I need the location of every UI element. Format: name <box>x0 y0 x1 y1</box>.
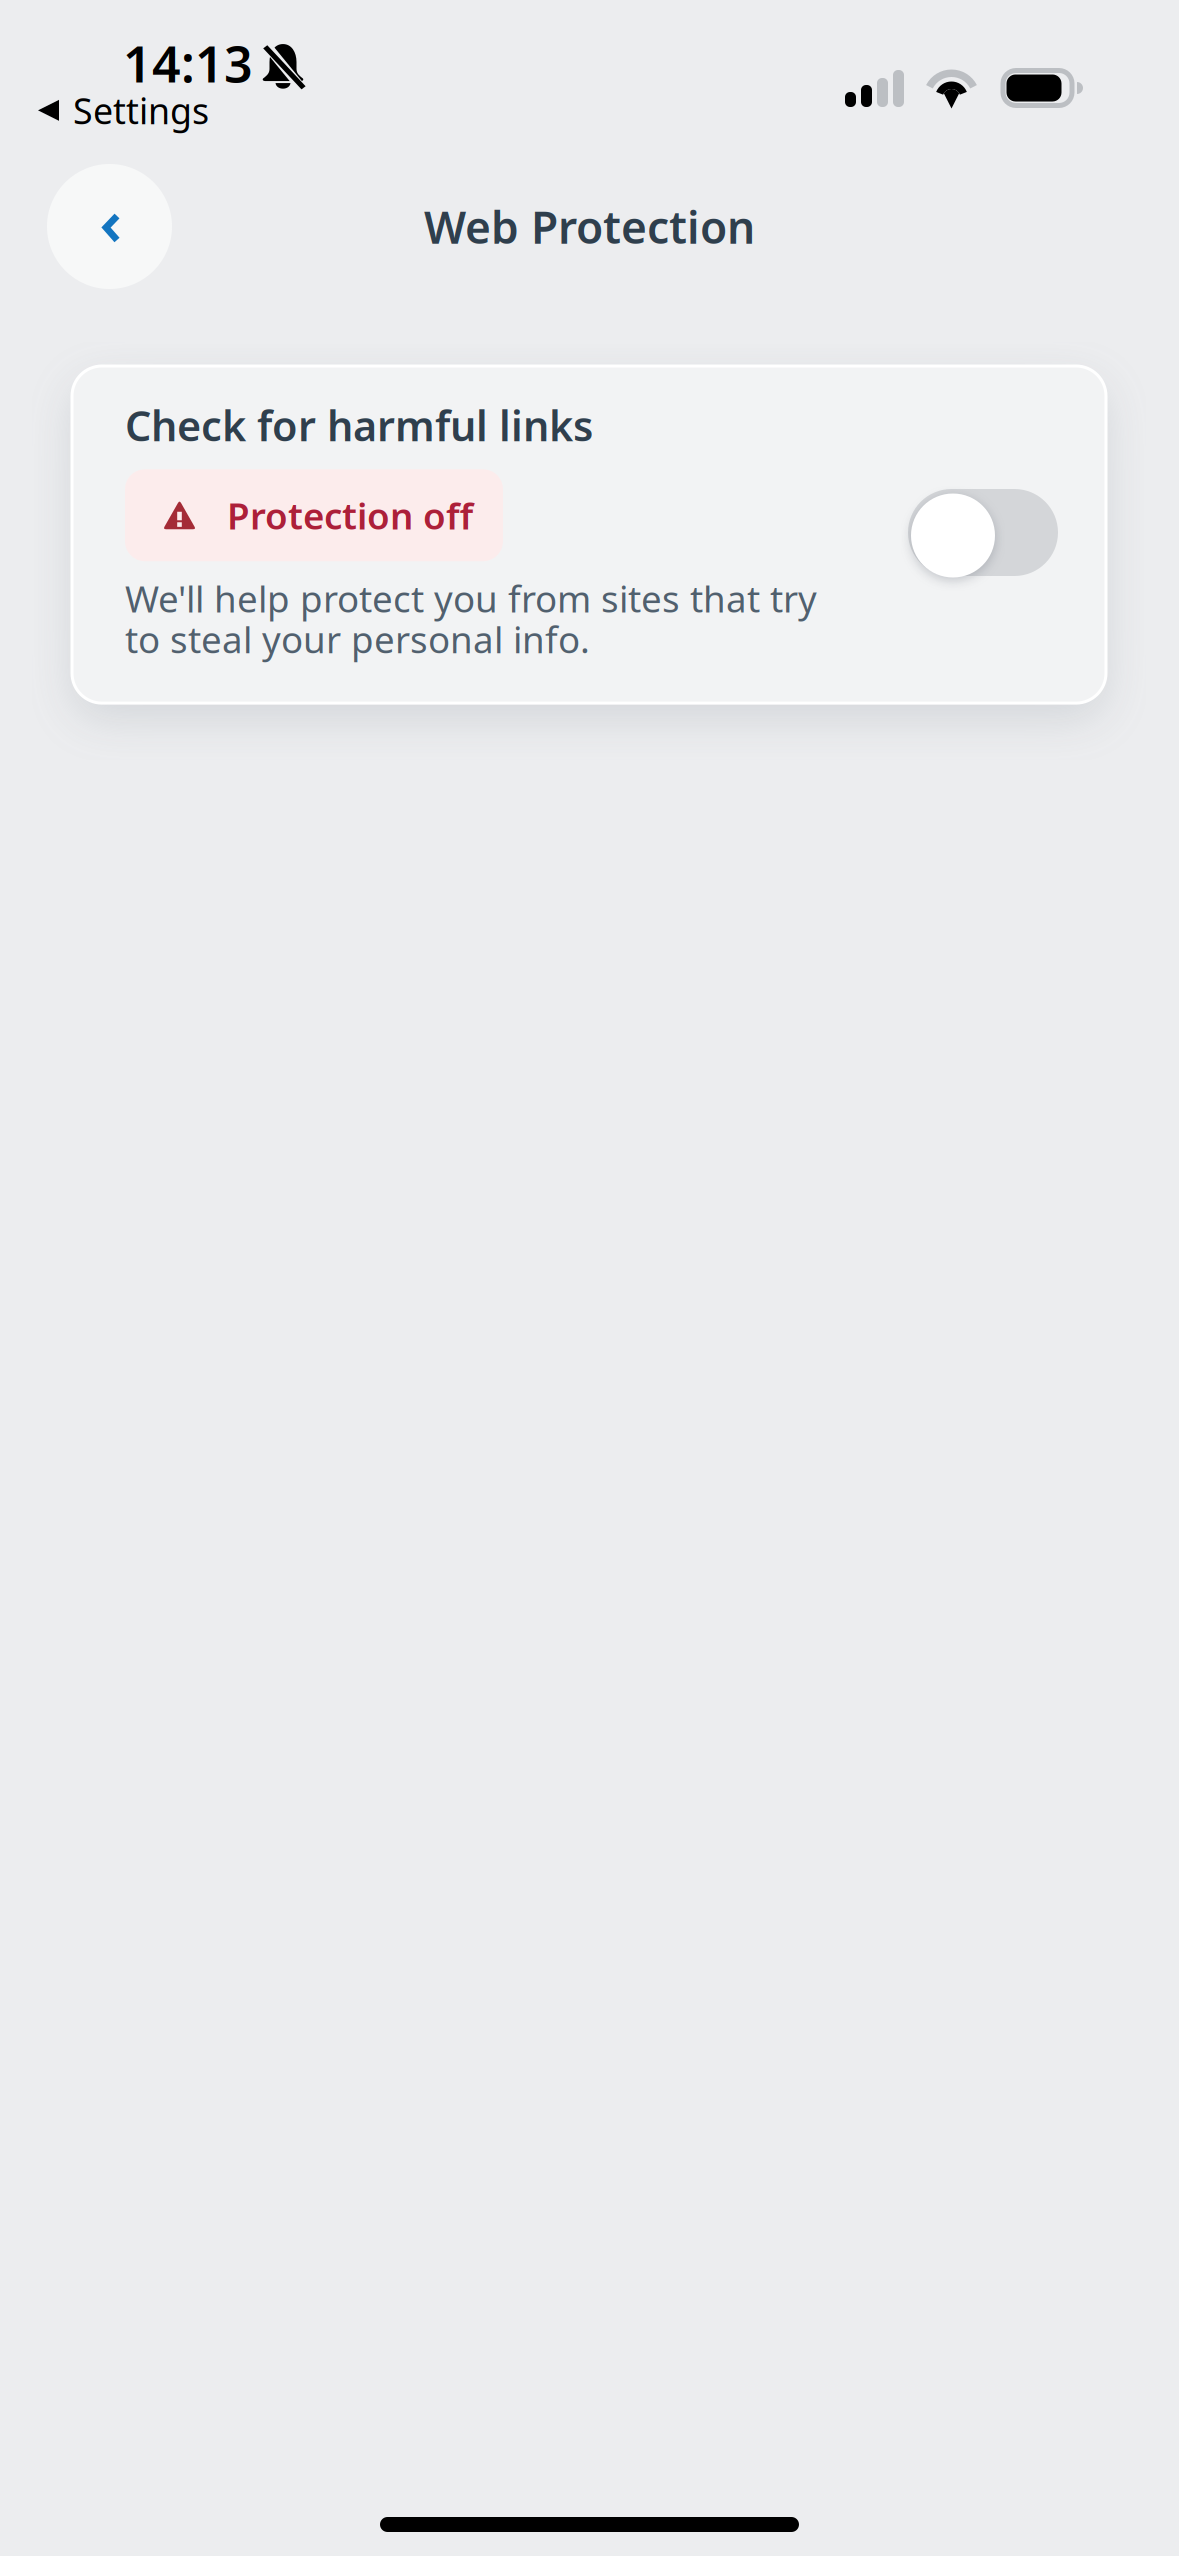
staticText: Check for harmful links <box>125 397 593 453</box>
staticText: We'll help protect you from sites that t… <box>125 573 817 623</box>
staticText: to steal your personal info. <box>125 614 590 664</box>
button[interactable]: Back <box>47 164 172 289</box>
staticText: Web Protection <box>424 196 755 257</box>
staticText: 14:13 <box>123 29 253 97</box>
button[interactable]: Check for harmful links <box>908 489 1058 576</box>
staticText: Settings <box>73 86 209 135</box>
staticText: Protection off <box>227 490 473 540</box>
button[interactable]: Settings <box>38 86 209 135</box>
